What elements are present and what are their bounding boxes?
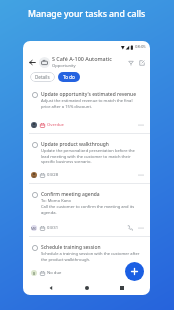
button[interactable]: Pin	[125, 57, 136, 68]
staticText: Schedule a training session with the cus…	[41, 251, 142, 262]
button[interactable]: More options	[137, 121, 145, 129]
staticText: Call the customer to confirm the meeting…	[41, 204, 142, 215]
staticText: Schedule training session	[41, 244, 101, 251]
staticText: To: Momo Kano	[41, 198, 72, 204]
staticText: Opportunity	[52, 63, 76, 69]
staticText: 08:05	[135, 44, 146, 50]
button[interactable]: Schedule training session	[23, 237, 150, 282]
staticText: S Café A-100 Automatic	[52, 55, 112, 62]
staticText: 03/31	[47, 225, 59, 231]
staticText: Overdue	[47, 122, 64, 128]
staticText: No due	[47, 270, 62, 276]
staticText: MK	[31, 226, 37, 231]
staticText: Adjust the estimated revenue to match th…	[41, 98, 142, 109]
staticText: Update product walkthrough	[41, 141, 109, 148]
staticText: B	[33, 271, 36, 276]
button[interactable]: Update product walkthrough	[23, 134, 150, 184]
staticText: Update the personalized presentation bef…	[41, 148, 142, 164]
button[interactable]: To do	[58, 72, 80, 82]
button[interactable]: Update opportunity's estimated revenue	[23, 84, 150, 134]
button[interactable]: Open in new	[136, 57, 147, 68]
staticText: Confirm meeting agenda	[41, 191, 100, 198]
button[interactable]: Add task	[125, 262, 144, 281]
staticText: Manage your tasks and calls	[28, 8, 146, 20]
staticText: 03/28	[47, 172, 59, 178]
button[interactable]: Back	[44, 281, 58, 295]
button[interactable]: Call	[126, 224, 134, 232]
button[interactable]: Confirm meeting agenda	[23, 184, 150, 237]
button[interactable]: Recent apps	[115, 281, 129, 295]
button[interactable]: More options	[137, 269, 145, 277]
staticText: Details	[35, 74, 50, 80]
button[interactable]: More options	[137, 171, 145, 179]
button[interactable]: Details	[30, 72, 55, 82]
button[interactable]: Home	[80, 281, 94, 295]
button[interactable]: Back	[27, 57, 38, 68]
staticText: Update opportunity's estimated revenue	[41, 91, 136, 98]
staticText: To do	[63, 74, 75, 80]
button[interactable]: More options	[137, 224, 145, 232]
